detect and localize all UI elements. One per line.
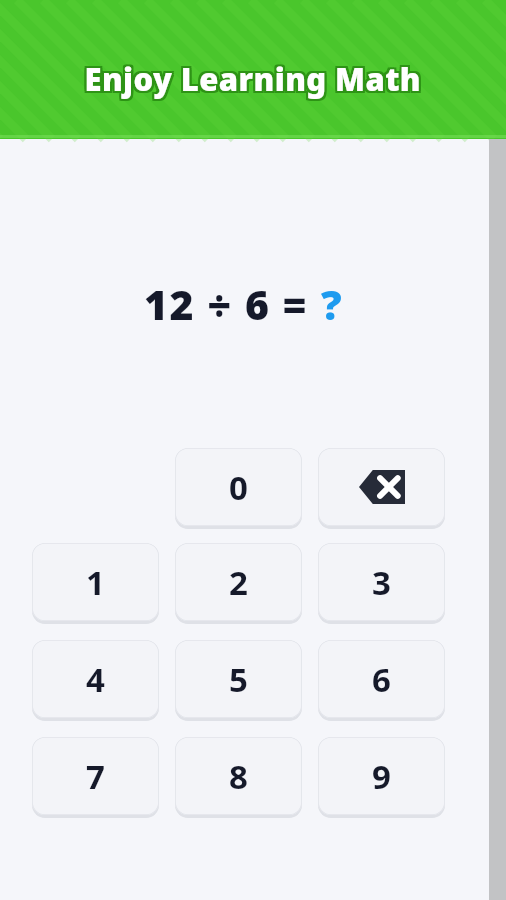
staticText: 8 [229, 754, 248, 799]
button[interactable]: 2 [175, 543, 302, 625]
staticText: 6 [372, 657, 391, 702]
button[interactable]: 9 [318, 737, 445, 819]
button[interactable]: 6 [318, 640, 445, 722]
staticText: 4 [86, 657, 105, 702]
button[interactable]: 1 [32, 543, 159, 625]
button[interactable]: Backspace [318, 448, 445, 530]
staticText: 7 [86, 754, 105, 799]
button[interactable]: 4 [32, 640, 159, 722]
staticText: 0 [229, 465, 248, 510]
button[interactable]: 7 [32, 737, 159, 819]
staticText: 3 [372, 560, 391, 605]
staticText: 5 [229, 657, 248, 702]
staticText: 2 [229, 560, 248, 605]
staticText: 9 [372, 754, 391, 799]
staticText: 1 [86, 560, 105, 605]
button[interactable]: 0 [175, 448, 302, 530]
button[interactable]: 5 [175, 640, 302, 722]
button[interactable]: 8 [175, 737, 302, 819]
button[interactable]: 3 [318, 543, 445, 625]
